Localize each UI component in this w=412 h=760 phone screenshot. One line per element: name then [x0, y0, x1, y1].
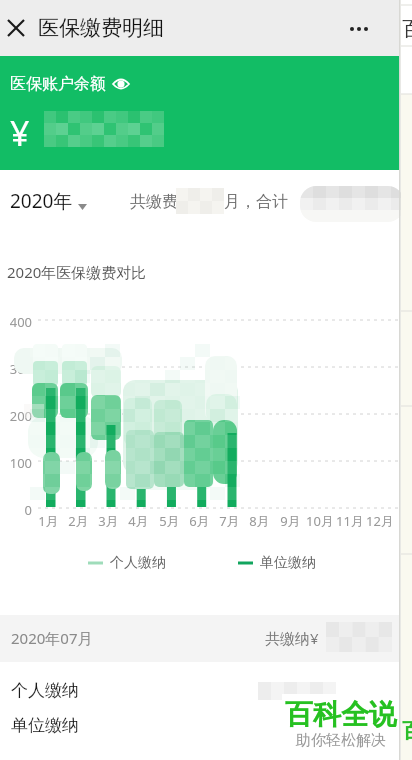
staticText: 11月 [336, 512, 364, 530]
staticText: 1月 [38, 512, 59, 530]
staticText: 助你轻松解决 [296, 731, 386, 750]
staticText: 10月 [306, 512, 334, 530]
staticText: 100 [9, 454, 32, 472]
staticText: 单位缴纳 [11, 715, 79, 736]
staticText: 共缴纳¥ [265, 628, 319, 648]
button[interactable]: 个人缴纳 [0, 676, 400, 708]
button[interactable]: 2020年07月 [0, 615, 400, 662]
button[interactable]: 医保账户余额 [0, 56, 399, 170]
button[interactable]: 百科全说 [282, 694, 399, 758]
staticText: 0 [24, 501, 32, 519]
staticText: 2020年07月 [11, 628, 93, 648]
staticText: 医保缴费明细 [38, 15, 164, 41]
staticText: 单位缴纳 [260, 554, 316, 572]
staticText: 3月 [98, 512, 119, 530]
staticText: 个人缴纳 [11, 680, 79, 701]
staticText: 8月 [249, 512, 270, 530]
staticText: 个人缴纳 [110, 554, 166, 572]
staticText: 2020年医保缴费对比 [7, 262, 147, 282]
staticText: 300 [9, 360, 32, 378]
staticText: 6月 [189, 512, 210, 530]
staticText: 2020年 [10, 188, 73, 214]
staticText: 百科全说 [285, 697, 397, 732]
staticText: 400 [9, 313, 32, 331]
button[interactable]: 2020年 [6, 188, 92, 220]
staticText: 9月 [280, 512, 301, 530]
staticText: 12月 [366, 512, 394, 530]
staticText: 共缴费 [130, 192, 178, 212]
staticText: 医保账户余额 [10, 74, 106, 94]
staticText: 4月 [128, 512, 149, 530]
staticText: 5月 [159, 512, 180, 530]
staticText: ¥ [10, 110, 30, 156]
staticText: 百 [402, 718, 412, 744]
staticText: 7月 [219, 512, 240, 530]
button[interactable] [345, 18, 373, 38]
staticText: 月，合计 [224, 192, 288, 212]
staticText: 2月 [68, 512, 89, 530]
staticText: 百 [402, 16, 412, 42]
button[interactable]: 单位缴纳 [0, 710, 400, 742]
staticText: 200 [9, 407, 32, 425]
button[interactable] [4, 16, 28, 40]
